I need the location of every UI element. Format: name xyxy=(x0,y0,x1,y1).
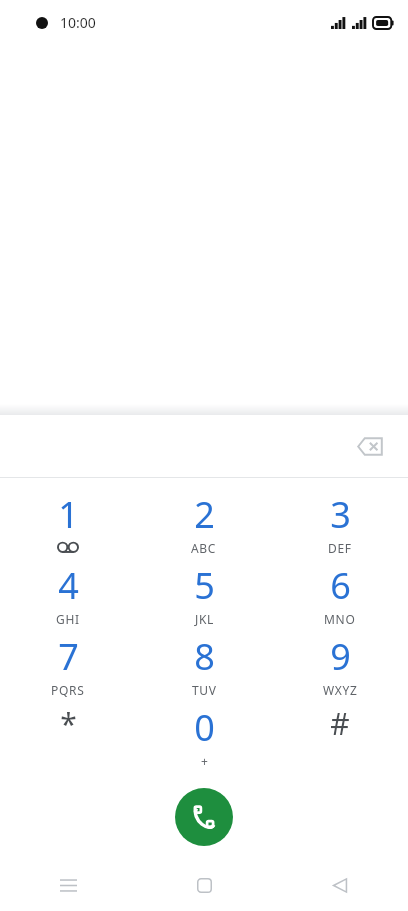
staticText: JKL xyxy=(195,611,215,627)
staticText: GHI xyxy=(56,611,80,627)
staticText: + xyxy=(201,753,209,769)
staticText: WXYZ xyxy=(323,682,358,698)
staticText: 0 xyxy=(194,703,215,752)
staticText: DEF xyxy=(328,540,352,556)
staticText: 8 xyxy=(194,632,215,681)
button[interactable]: Recent apps xyxy=(0,860,136,911)
staticText: ABC xyxy=(191,540,217,556)
button[interactable]: 6 xyxy=(272,559,408,630)
staticText: 6 xyxy=(330,561,351,610)
button[interactable]: 4 xyxy=(0,559,136,630)
button[interactable]: 2 xyxy=(136,488,272,559)
button[interactable]: Backspace xyxy=(346,422,394,470)
staticText: 3 xyxy=(330,490,351,539)
staticText: 1 xyxy=(58,490,79,539)
button[interactable]: Home xyxy=(136,860,272,911)
button[interactable]: 0 xyxy=(136,701,272,772)
staticText: TUV xyxy=(192,682,217,698)
staticText: MNO xyxy=(324,611,356,627)
staticText: 4 xyxy=(58,561,79,610)
button[interactable]: 8 xyxy=(136,630,272,701)
staticText: 10:00 xyxy=(60,13,96,32)
button[interactable]: * xyxy=(0,701,136,772)
staticText: 7 xyxy=(58,632,79,681)
staticText: PQRS xyxy=(51,682,85,698)
button[interactable]: 9 xyxy=(272,630,408,701)
staticText: 9 xyxy=(330,632,351,681)
staticText: * xyxy=(60,703,77,744)
button[interactable]: 3 xyxy=(272,488,408,559)
button[interactable]: Call xyxy=(175,788,233,846)
staticText: 2 xyxy=(194,490,215,539)
staticText: 5 xyxy=(194,561,215,610)
button[interactable]: 7 xyxy=(0,630,136,701)
button[interactable]: 1 xyxy=(0,488,136,559)
staticText: # xyxy=(330,703,350,744)
button[interactable]: # xyxy=(272,701,408,772)
button[interactable]: 5 xyxy=(136,559,272,630)
button[interactable]: Back xyxy=(272,860,408,911)
